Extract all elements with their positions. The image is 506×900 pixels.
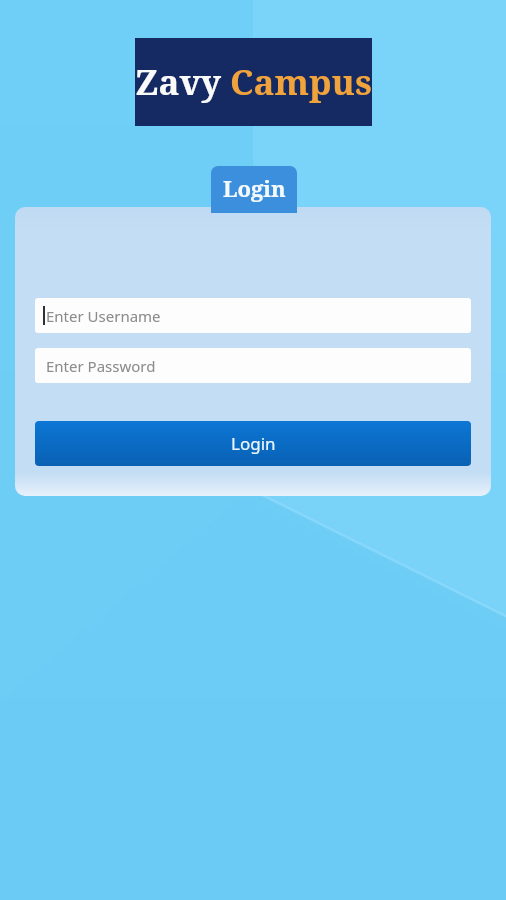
staticText: Enter Username xyxy=(46,306,161,326)
staticText: Login xyxy=(231,432,276,455)
button[interactable]: Zavy Campus logo xyxy=(135,38,372,126)
staticText: Zavy Campus xyxy=(135,58,372,106)
staticText: Login xyxy=(223,173,286,203)
button[interactable]: Enter Password xyxy=(35,348,471,383)
button[interactable]: Enter Username xyxy=(35,298,471,333)
button[interactable]: Login xyxy=(211,166,297,213)
staticText: Enter Password xyxy=(46,356,156,376)
button[interactable]: Login xyxy=(35,421,471,466)
